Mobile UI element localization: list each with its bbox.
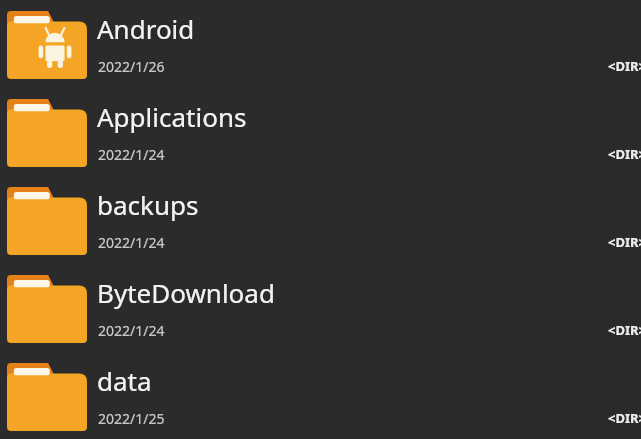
staticText: 2022/1/24 [98, 145, 165, 164]
staticText: ByteDownload [97, 275, 275, 310]
other: Folder Applications [7, 99, 87, 167]
staticText: 2022/1/24 [98, 233, 165, 252]
staticText: Android [97, 11, 195, 46]
staticText: Applications [97, 99, 247, 134]
staticText: <DIR> [608, 233, 641, 251]
staticText: <DIR> [608, 409, 641, 427]
staticText: 2022/1/25 [98, 409, 165, 428]
staticText: 2022/1/26 [98, 57, 165, 76]
other: Folder backups [7, 187, 87, 255]
button[interactable]: Folder data [0, 363, 641, 439]
staticText: backups [97, 187, 199, 222]
button[interactable]: Folder Applications [0, 99, 641, 187]
button[interactable]: Folder Android [0, 11, 641, 99]
staticText: <DIR> [608, 145, 641, 163]
staticText: <DIR> [608, 57, 641, 75]
staticText: data [97, 363, 152, 398]
button[interactable]: Folder ByteDownload [0, 275, 641, 363]
button[interactable]: Folder backups [0, 187, 641, 275]
other: Folder ByteDownload [7, 275, 87, 343]
staticText: 2022/1/24 [98, 321, 165, 340]
staticText: <DIR> [608, 321, 641, 339]
other: Folder data [7, 363, 87, 431]
other: Folder Android [7, 11, 87, 79]
